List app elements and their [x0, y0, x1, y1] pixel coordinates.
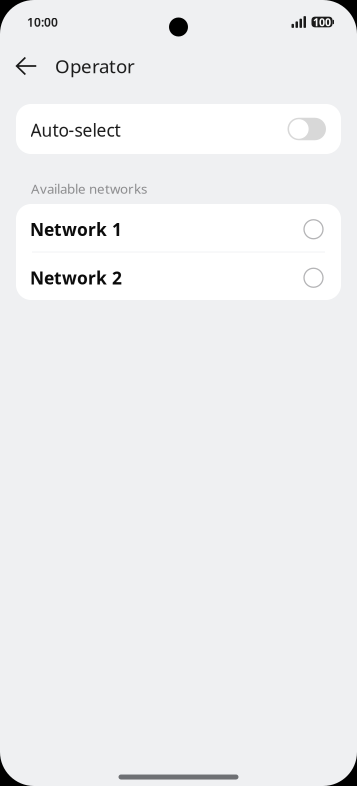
staticText: Operator [55, 54, 135, 78]
button[interactable]: Network 2 [16, 252, 341, 300]
button[interactable]: Back [8, 46, 45, 86]
staticText: 10:00 [27, 14, 58, 30]
button[interactable]: Auto-select [16, 104, 341, 154]
staticText: Auto-select [30, 118, 120, 141]
staticText: Available networks [31, 180, 147, 197]
button[interactable]: Network 1 [16, 204, 341, 251]
staticText: Network 1 [30, 218, 122, 241]
staticText: Network 2 [30, 266, 122, 289]
staticText: 100 [313, 15, 331, 29]
